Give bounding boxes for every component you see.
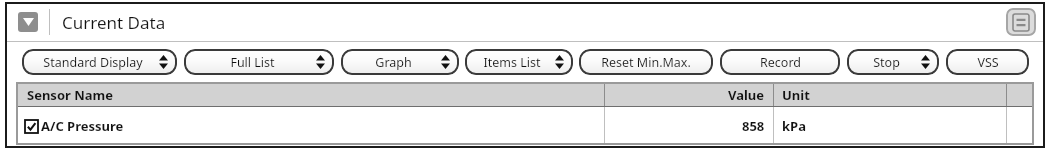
staticText: Sensor Name xyxy=(27,86,114,104)
staticText: Full List xyxy=(230,54,275,71)
button[interactable]: Standard Display xyxy=(22,49,177,75)
button[interactable]: Sensor Name xyxy=(16,82,604,107)
staticText: A/C Pressure xyxy=(41,117,124,135)
staticText: Graph xyxy=(375,54,412,71)
staticText: Standard Display xyxy=(43,54,143,71)
staticText: Current Data xyxy=(62,11,166,34)
staticText: 858 xyxy=(742,117,765,135)
button[interactable]: Full List xyxy=(184,49,334,75)
staticText: Items List xyxy=(483,54,541,71)
staticText: VSS xyxy=(977,54,999,71)
button[interactable]: Menu xyxy=(1006,8,1036,36)
staticText: Record xyxy=(760,54,801,71)
staticText: Unit xyxy=(782,86,810,104)
button[interactable]: Stop xyxy=(847,49,939,75)
button[interactable]: Collapse Current Data xyxy=(18,12,38,32)
button[interactable]: Unit xyxy=(774,82,1006,107)
staticText: Value xyxy=(728,86,765,104)
button[interactable]: Items List xyxy=(465,49,573,75)
staticText: Reset Min.Max. xyxy=(601,54,691,71)
button[interactable]: VSS xyxy=(946,49,1029,75)
button[interactable]: Reset Min.Max. xyxy=(579,49,713,75)
staticText: kPa xyxy=(782,117,806,135)
button[interactable]: Value xyxy=(605,82,773,107)
button[interactable]: A/C Pressure xyxy=(16,107,1034,145)
button[interactable]: Record xyxy=(720,49,840,75)
button[interactable]: Graph xyxy=(341,49,459,75)
staticText: Stop xyxy=(873,54,900,71)
